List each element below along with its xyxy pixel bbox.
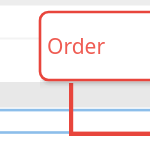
button[interactable]: Order field <box>0 0 150 150</box>
